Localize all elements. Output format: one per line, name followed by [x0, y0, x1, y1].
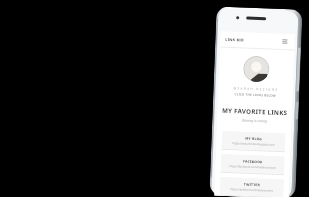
staticText: TWITTER	[224, 181, 280, 187]
staticText: sharing is caring	[217, 116, 291, 124]
button[interactable]: MY BLOG	[221, 131, 286, 151]
staticText: MY BLOG	[226, 135, 282, 141]
button[interactable]: Link bio home	[225, 35, 244, 44]
button[interactable]: TWITTER	[219, 177, 284, 197]
staticText: MY FAVORITE LINKS	[217, 105, 292, 116]
staticText: FACEBOOK	[225, 158, 281, 164]
button[interactable]: Profile photo	[243, 55, 270, 82]
staticText: https://facebook.com/linkbiocontent	[224, 164, 281, 170]
staticText: @ S A R A H . D E S I G N S	[218, 86, 293, 92]
button[interactable]: Menu	[280, 37, 289, 46]
staticText: https://www.linkbio.blogspot.com	[225, 141, 281, 147]
staticText: CLICK THE LINKS BELOW	[218, 91, 292, 98]
button[interactable]: FACEBOOK	[220, 154, 285, 174]
staticText: LINK BIO	[225, 37, 244, 42]
staticText: https://twitter.com/linkbiocontent	[224, 187, 280, 193]
